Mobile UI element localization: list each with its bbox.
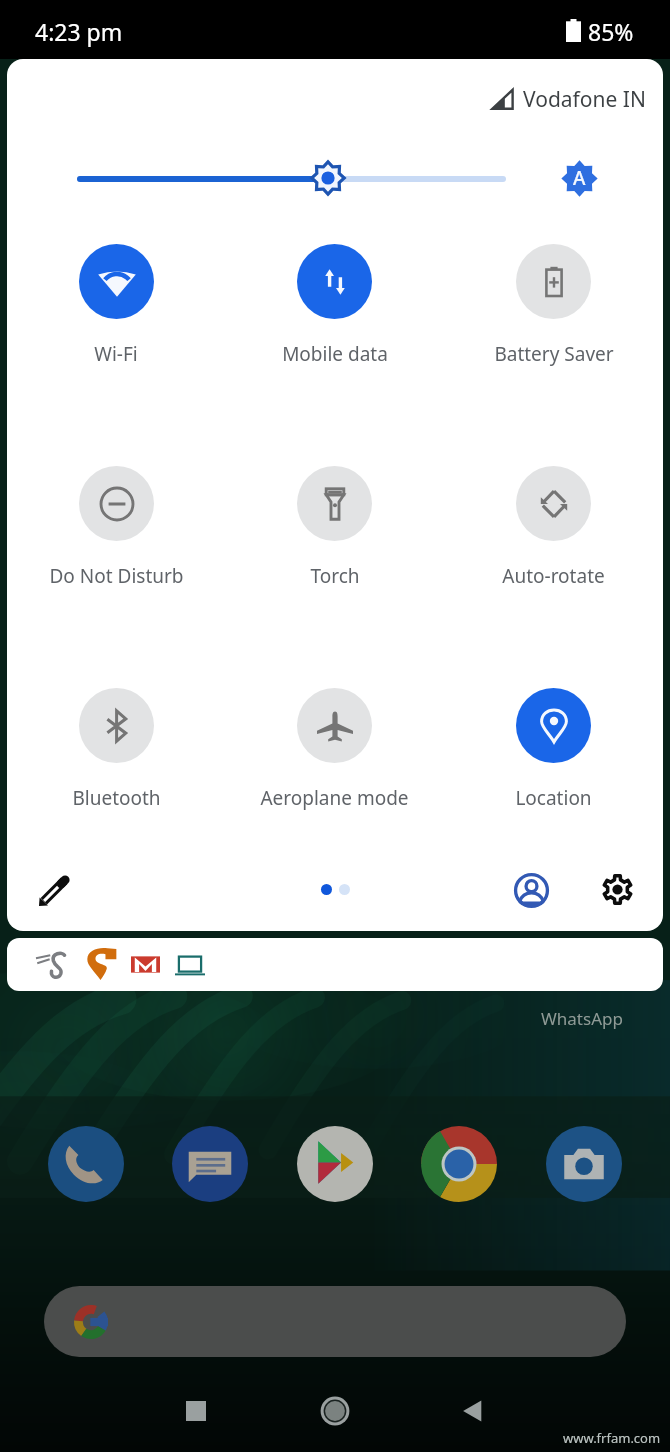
staticText: Location <box>515 785 592 811</box>
staticText: WhatsApp <box>541 1007 623 1030</box>
button[interactable]: Recent apps <box>176 1391 216 1431</box>
button[interactable]: App <box>546 1126 622 1202</box>
staticText: Vodafone IN <box>523 85 646 114</box>
button[interactable]: Wi-Fi <box>7 244 225 367</box>
staticText: Torch <box>310 563 360 589</box>
button[interactable]: Notification <box>36 949 67 980</box>
staticText: 85% <box>588 16 634 47</box>
button[interactable]: Auto-rotate <box>444 466 663 589</box>
staticText: Battery Saver <box>494 341 614 367</box>
button[interactable]: App <box>421 1126 497 1202</box>
button[interactable]: App <box>48 1126 124 1202</box>
staticText: 4:23 pm <box>35 16 123 47</box>
button[interactable]: Mobile data <box>225 244 444 367</box>
staticText: Auto-rotate <box>502 563 605 589</box>
button[interactable]: Notification <box>175 950 205 980</box>
button[interactable]: Notification <box>131 950 160 979</box>
button[interactable]: Back <box>453 1391 493 1431</box>
staticText: A <box>573 165 586 191</box>
button[interactable]: App <box>172 1126 248 1202</box>
button[interactable]: Search <box>44 1286 626 1357</box>
button[interactable]: Aeroplane mode <box>225 688 444 811</box>
button[interactable]: Home <box>315 1391 355 1431</box>
button[interactable]: Edit <box>26 863 82 919</box>
staticText: Aeroplane mode <box>260 785 409 811</box>
staticText: www.frfam.com <box>563 1429 661 1447</box>
button[interactable]: Auto brightness <box>561 160 598 197</box>
button[interactable]: Settings <box>589 861 645 917</box>
button[interactable]: Notification <box>85 947 118 980</box>
button[interactable]: Battery Saver <box>444 244 663 367</box>
button[interactable]: Brightness <box>309 159 347 197</box>
button[interactable]: Torch <box>225 466 444 589</box>
button[interactable]: Do Not Disturb <box>7 466 225 589</box>
button[interactable]: Location <box>444 688 663 811</box>
staticText: Do Not Disturb <box>49 563 184 589</box>
button[interactable]: User <box>503 862 559 918</box>
staticText: Wi-Fi <box>94 341 138 367</box>
button[interactable]: Bluetooth <box>7 688 225 811</box>
button[interactable]: App <box>297 1126 373 1202</box>
staticText: Bluetooth <box>72 785 161 811</box>
staticText: Mobile data <box>282 341 388 367</box>
